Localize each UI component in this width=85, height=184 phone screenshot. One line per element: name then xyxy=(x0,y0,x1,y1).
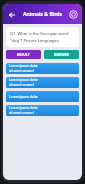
button[interactable]: Lorem ipsum dolor xyxy=(6,63,79,74)
staticText: sit amet consect xyxy=(9,111,34,115)
staticText: Lorem ipsum dolor xyxy=(9,78,38,82)
button[interactable]: RESULT xyxy=(6,50,41,59)
button[interactable]: Lorem ipsum dolor xyxy=(6,91,79,102)
staticText: RESULT xyxy=(17,52,30,57)
staticText: Q1. What is the Georgian word for xyxy=(10,31,75,36)
staticText: Lorem ipsum dolor xyxy=(9,95,38,99)
staticText: sit amet consect xyxy=(9,83,34,87)
button[interactable]: Lorem ipsum dolor xyxy=(6,77,79,88)
button[interactable]: Lorem ipsum dolor xyxy=(6,105,79,116)
staticText: Lorem ipsum dolor xyxy=(9,106,38,110)
staticText: Animals & Birds Vo... xyxy=(18,11,67,18)
button[interactable]: ANSWER xyxy=(44,50,79,59)
staticText: sit amet consect xyxy=(9,69,34,73)
staticText: Lorem ipsum dolor xyxy=(9,64,38,68)
staticText: ANSWER xyxy=(54,52,69,57)
button[interactable]: Back xyxy=(6,9,17,20)
staticText: "dog"? Picture Languages xyxy=(10,38,59,43)
button[interactable]: Q1. What is the Georgian word for xyxy=(6,27,79,47)
button[interactable]: Info xyxy=(68,9,79,20)
